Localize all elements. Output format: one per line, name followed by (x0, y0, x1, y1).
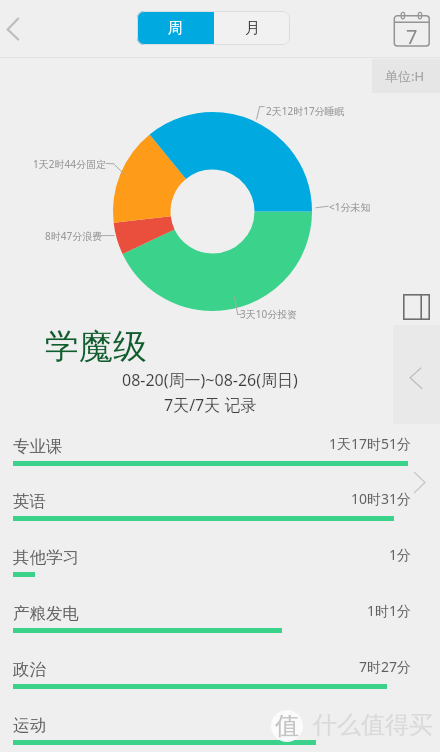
button[interactable]: 周 (137, 11, 214, 45)
staticText: 政治 (13, 659, 46, 680)
staticText: 值 (275, 711, 299, 741)
staticText: 1天17时51分 (329, 434, 412, 453)
button[interactable]: 运动 (0, 714, 440, 752)
button[interactable]: More (406, 464, 432, 500)
button[interactable]: Open panel (393, 325, 440, 424)
button[interactable]: 月 (214, 11, 290, 45)
staticText: 08-20(周一)~08-26(周日) (122, 369, 298, 391)
button[interactable]: 英语 (0, 490, 440, 546)
button[interactable]: 产粮发电 (0, 602, 440, 658)
staticText: 1时1分 (367, 601, 412, 620)
staticText: <1分未知 (329, 200, 371, 214)
staticText: 周 (168, 19, 183, 38)
staticText: 8时47分浪费 (45, 229, 103, 243)
staticText: 学魔级 (45, 325, 147, 368)
staticText: 产粮发电 (13, 603, 79, 624)
button[interactable]: Layout (403, 294, 430, 320)
staticText: 1天2时44分固定 (33, 157, 106, 171)
staticText: 英语 (13, 491, 46, 512)
staticText: 7天/7天 记录 (164, 394, 257, 416)
staticText: 7时27分 (359, 657, 412, 676)
staticText: 什么值得买 (313, 710, 433, 740)
staticText: 7 (406, 23, 418, 50)
staticText: 3天10分投资 (240, 307, 298, 321)
button[interactable]: 政治 (0, 658, 440, 714)
staticText: 运动 (13, 715, 46, 736)
staticText: 10时31分 (351, 489, 412, 508)
staticText: 单位:H (385, 67, 425, 85)
button[interactable]: Back (0, 4, 36, 54)
staticText: 其他学习 (13, 547, 79, 568)
button[interactable]: 专业课 (0, 435, 440, 491)
button[interactable]: Calendar (392, 10, 432, 50)
staticText: 月 (245, 19, 260, 38)
button[interactable]: 其他学习 (0, 546, 440, 602)
staticText: 1分 (389, 545, 412, 564)
staticText: 2天12时17分睡眠 (266, 104, 345, 118)
staticText: 专业课 (13, 436, 63, 457)
